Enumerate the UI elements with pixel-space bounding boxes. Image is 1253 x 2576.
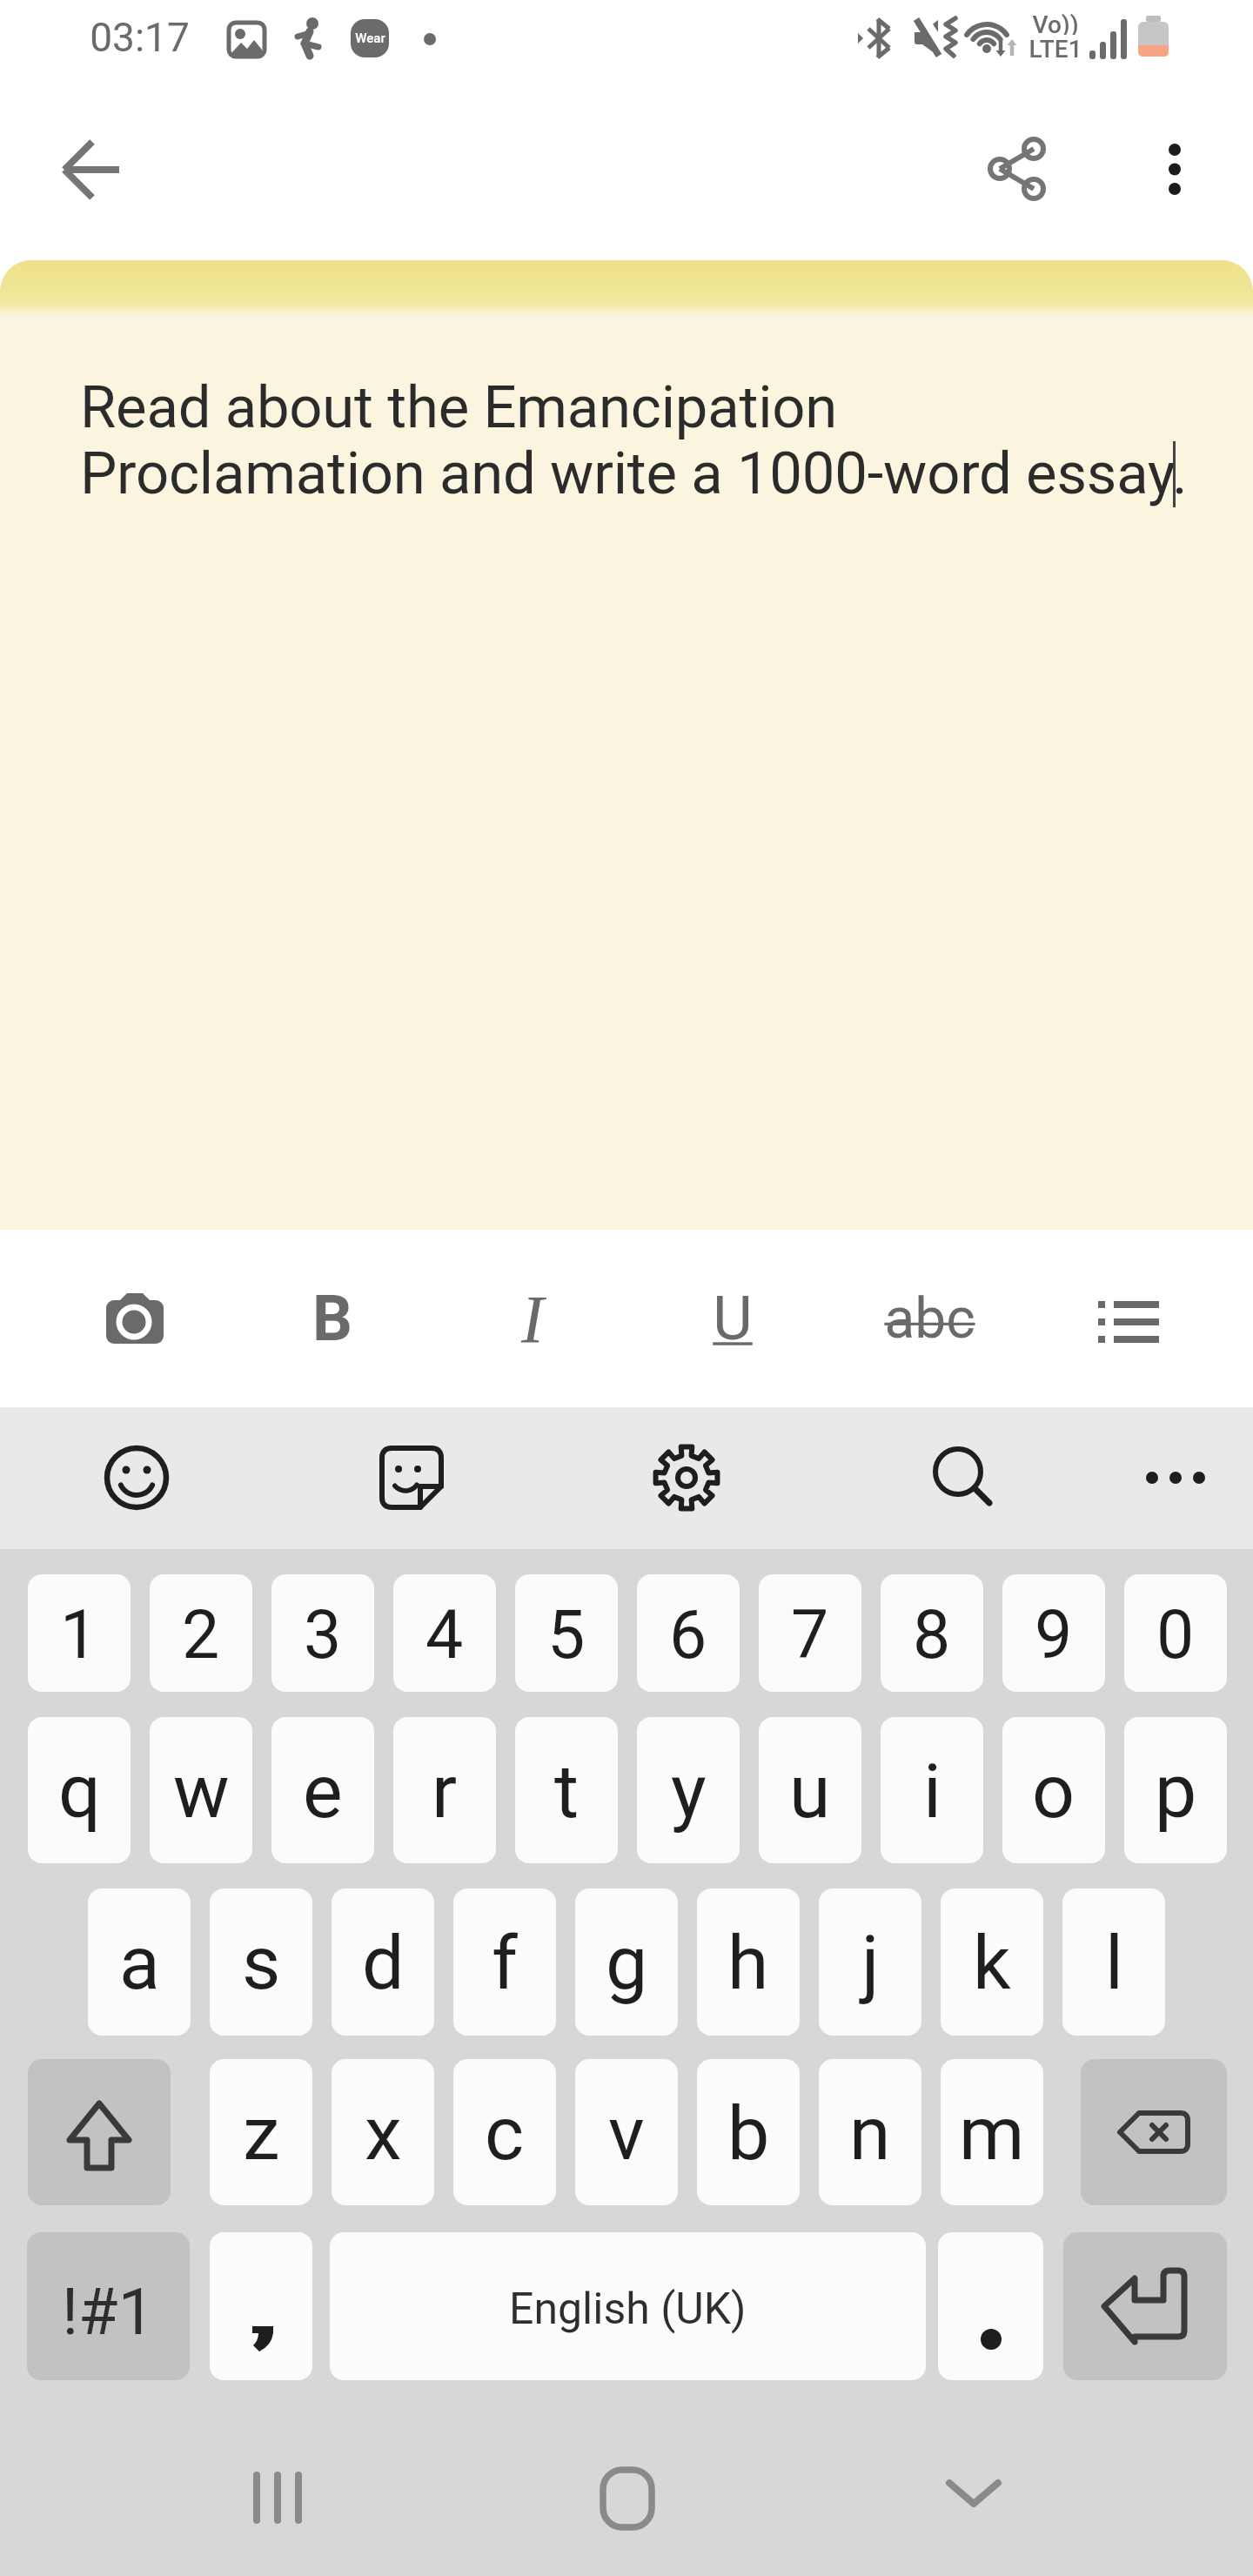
- button[interactable]: [87, 1271, 183, 1366]
- button[interactable]: 3: [271, 1574, 374, 1692]
- staticText: Wear: [355, 30, 385, 46]
- button[interactable]: [1063, 2232, 1227, 2380]
- button[interactable]: [1140, 131, 1209, 209]
- button[interactable]: w: [150, 1717, 252, 1863]
- staticText: 03:17: [90, 14, 190, 61]
- staticText: U: [713, 1283, 753, 1354]
- button[interactable]: U: [687, 1271, 778, 1366]
- button[interactable]: p: [1124, 1717, 1227, 1863]
- button[interactable]: abc: [860, 1271, 999, 1366]
- button[interactable]: 4: [393, 1574, 496, 1692]
- staticText: k: [973, 1919, 1011, 2007]
- button[interactable]: 6: [637, 1574, 740, 1692]
- staticText: c: [485, 2090, 525, 2177]
- button[interactable]: c: [453, 2059, 556, 2205]
- button[interactable]: z: [210, 2059, 312, 2205]
- staticText: 1: [60, 1596, 98, 1674]
- staticText: q: [58, 1748, 101, 1835]
- button[interactable]: j: [819, 1888, 921, 2036]
- button[interactable]: [28, 2059, 171, 2205]
- staticText: b: [727, 2090, 770, 2177]
- staticText: f: [492, 1919, 518, 2007]
- staticText: Vo)): [1032, 10, 1079, 35]
- button[interactable]: [630, 1421, 743, 1534]
- staticText: p: [1155, 1748, 1197, 1835]
- button[interactable]: [1081, 1271, 1176, 1366]
- staticText: v: [608, 2090, 645, 2177]
- staticText: e: [303, 1748, 343, 1835]
- button[interactable]: [355, 1421, 468, 1534]
- staticText: i: [923, 1748, 941, 1835]
- button[interactable]: 0: [1124, 1574, 1227, 1692]
- button[interactable]: i: [881, 1717, 983, 1863]
- staticText: w: [173, 1748, 230, 1835]
- button[interactable]: t: [515, 1717, 618, 1863]
- staticText: h: [727, 1919, 769, 2007]
- staticText: s: [242, 1919, 281, 2007]
- button[interactable]: 1: [28, 1574, 131, 1692]
- staticText: o: [1032, 1748, 1075, 1835]
- button[interactable]: o: [1002, 1717, 1105, 1863]
- staticText: j: [861, 1919, 880, 2007]
- button[interactable]: a: [88, 1888, 191, 2036]
- staticText: 5: [547, 1596, 586, 1674]
- button[interactable]: e: [271, 1717, 374, 1863]
- button[interactable]: d: [332, 1888, 434, 2036]
- staticText: abc: [884, 1286, 975, 1352]
- button[interactable]: b: [697, 2059, 800, 2205]
- staticText: 8: [913, 1596, 951, 1674]
- button[interactable]: y: [637, 1717, 740, 1863]
- staticText: n: [849, 2090, 891, 2177]
- button[interactable]: v: [575, 2059, 678, 2205]
- button[interactable]: [80, 1421, 193, 1534]
- button[interactable]: B: [287, 1271, 378, 1366]
- staticText: g: [606, 1919, 648, 2007]
- button[interactable]: h: [697, 1888, 800, 2036]
- button[interactable]: I: [487, 1271, 578, 1366]
- button[interactable]: l: [1062, 1888, 1165, 2036]
- button[interactable]: q: [28, 1717, 131, 1863]
- button[interactable]: [210, 2232, 312, 2380]
- staticText: x: [365, 2090, 402, 2177]
- button[interactable]: [218, 2437, 339, 2559]
- staticText: z: [243, 2090, 280, 2177]
- button[interactable]: 9: [1002, 1574, 1105, 1692]
- staticText: LTE1: [1029, 35, 1082, 59]
- button[interactable]: 2: [150, 1574, 252, 1692]
- button[interactable]: m: [941, 2059, 1043, 2205]
- staticText: 7: [791, 1596, 829, 1674]
- button[interactable]: [35, 113, 148, 226]
- button[interactable]: [1081, 2059, 1227, 2205]
- button[interactable]: 5: [515, 1574, 618, 1692]
- staticText: r: [432, 1748, 458, 1835]
- button[interactable]: [986, 135, 1051, 205]
- staticText: m: [959, 2090, 1025, 2177]
- staticText: t: [554, 1748, 580, 1835]
- button[interactable]: 7: [759, 1574, 861, 1692]
- staticText: 4: [425, 1596, 464, 1674]
- staticText: a: [119, 1919, 160, 2007]
- button[interactable]: r: [393, 1717, 496, 1863]
- button[interactable]: [1119, 1421, 1232, 1534]
- button[interactable]: !#1: [27, 2232, 190, 2380]
- staticText: 9: [1035, 1596, 1073, 1674]
- button[interactable]: x: [332, 2059, 434, 2205]
- button[interactable]: g: [575, 1888, 678, 2036]
- staticText: I: [521, 1281, 544, 1356]
- button[interactable]: [906, 1421, 1019, 1534]
- button[interactable]: s: [210, 1888, 312, 2036]
- button[interactable]: [566, 2437, 688, 2559]
- button[interactable]: k: [941, 1888, 1043, 2036]
- staticText: Read about the Emancipation: [80, 373, 838, 442]
- staticText: 0: [1156, 1596, 1195, 1674]
- staticText: y: [671, 1748, 707, 1835]
- button[interactable]: [913, 2437, 1035, 2559]
- staticText: English (UK): [509, 2284, 747, 2335]
- button[interactable]: f: [453, 1888, 556, 2036]
- button[interactable]: English (UK): [330, 2232, 926, 2380]
- button[interactable]: n: [819, 2059, 921, 2205]
- button[interactable]: u: [759, 1717, 861, 1863]
- button[interactable]: [938, 2232, 1043, 2380]
- button[interactable]: 8: [881, 1574, 983, 1692]
- staticText: l: [1105, 1919, 1123, 2007]
